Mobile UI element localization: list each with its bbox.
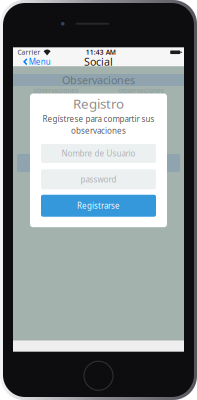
staticText: Observaciones bbox=[62, 73, 135, 87]
staticText: 11:43 AM bbox=[86, 48, 116, 57]
staticText: Registro bbox=[73, 95, 124, 112]
button[interactable]: password bbox=[41, 169, 156, 189]
staticText: Regístrese para compartir sus bbox=[42, 113, 154, 124]
staticText: Registrarse bbox=[77, 200, 120, 211]
staticText: observaciones bbox=[119, 86, 164, 95]
staticText: observaciones bbox=[71, 125, 126, 136]
staticText: Carrier bbox=[18, 48, 41, 57]
button[interactable]: Registrarse bbox=[41, 195, 156, 217]
staticText: Social bbox=[84, 54, 113, 69]
staticText: Nombre de Usuario bbox=[61, 148, 135, 159]
staticText: password bbox=[80, 174, 116, 185]
button[interactable]: Nombre de Usuario bbox=[41, 144, 156, 163]
button[interactable]: Menu bbox=[13, 57, 54, 66]
staticText: observaciones bbox=[33, 86, 78, 95]
staticText: Menu bbox=[29, 56, 51, 67]
